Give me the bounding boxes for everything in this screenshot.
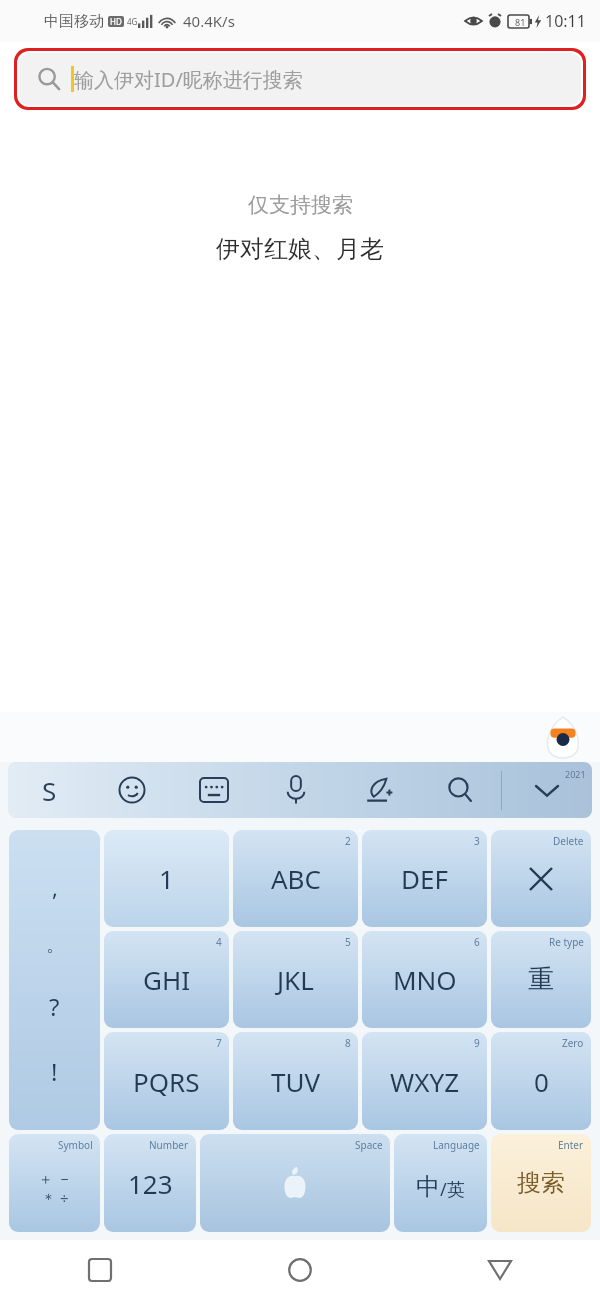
button[interactable]: 5 [233, 931, 358, 1028]
button[interactable]: Recent apps [0, 1240, 200, 1300]
staticText: GHI [143, 962, 191, 997]
staticText: Number [149, 1138, 189, 1152]
staticText: 3 [474, 834, 480, 848]
staticText: Space [355, 1138, 383, 1152]
staticText: 2 [345, 834, 351, 848]
button[interactable]: Language [394, 1134, 487, 1232]
button[interactable]: Zero [491, 1032, 591, 1130]
staticText: ? [49, 990, 60, 1023]
staticText: 6 [474, 935, 480, 949]
staticText: 中 [416, 1172, 440, 1202]
staticText: TUV [271, 1064, 321, 1099]
other: Search [37, 67, 61, 91]
staticText: ＊ ÷ [41, 1188, 69, 1208]
staticText: 10:11 [545, 10, 586, 32]
staticText: ABC [271, 861, 321, 896]
staticText: 。 [46, 934, 64, 957]
staticText: MNO [393, 962, 457, 997]
button[interactable]: 9 [362, 1032, 487, 1130]
button[interactable]: 2 [233, 830, 358, 927]
staticText: PQRS [133, 1064, 200, 1099]
button[interactable]: Search [419, 762, 501, 818]
button[interactable]: Number [104, 1134, 196, 1232]
button[interactable]: Voice input [255, 762, 337, 818]
staticText: Enter [558, 1138, 584, 1152]
button[interactable]: Back [400, 1240, 600, 1300]
staticText: 中国移动 [44, 12, 104, 31]
staticText: 8 [345, 1036, 351, 1050]
staticText: 123 [128, 1166, 173, 1201]
staticText: 搜索 [517, 1168, 565, 1198]
staticText: /英 [440, 1177, 465, 1202]
staticText: JKL [277, 962, 314, 997]
button[interactable]: , [9, 830, 100, 1130]
button[interactable]: Re type [491, 931, 591, 1028]
button[interactable]: 4 [104, 931, 229, 1028]
button[interactable]: 6 [362, 931, 487, 1028]
staticText: 7 [216, 1036, 222, 1050]
staticText: Delete [553, 834, 584, 848]
button[interactable]: Delete [491, 830, 591, 927]
button[interactable]: Search [19, 53, 581, 105]
button[interactable]: Handwriting [337, 762, 419, 818]
staticText: HD [110, 16, 122, 27]
staticText: 0 [534, 1064, 549, 1099]
staticText: 仅支持搜索 [248, 192, 353, 218]
button[interactable]: Keyboard [173, 762, 255, 818]
staticText: 4G [127, 16, 138, 27]
staticText: Re type [549, 935, 584, 949]
button[interactable]: Enter [491, 1134, 591, 1232]
staticText: 40.4K/s [183, 11, 235, 31]
staticText: 2021 [565, 768, 586, 780]
staticText: 81 [515, 16, 526, 28]
staticText: 9 [474, 1036, 480, 1050]
button[interactable]: Space [200, 1134, 390, 1232]
staticText: DEF [401, 861, 448, 896]
button[interactable]: 7 [104, 1032, 229, 1130]
button[interactable]: Emoji [91, 762, 173, 818]
staticText: Zero [562, 1036, 584, 1050]
staticText: 重 [528, 963, 554, 996]
staticText: ＋ － [38, 1168, 72, 1188]
staticText: WXYZ [390, 1064, 460, 1099]
button[interactable]: 1 [104, 830, 229, 927]
staticText: 1 [159, 861, 174, 896]
staticText: Language [433, 1138, 480, 1152]
staticText: 伊对红娘、月老 [216, 234, 384, 264]
button[interactable]: Hide keyboard [502, 762, 592, 818]
staticText: 4 [216, 935, 222, 949]
staticText: S [42, 773, 57, 808]
staticText: ! [51, 1055, 58, 1088]
staticText: 输入伊对ID/昵称进行搜索 [74, 66, 303, 93]
button[interactable]: Sogou [8, 762, 91, 818]
button[interactable]: Symbol [9, 1134, 100, 1232]
button[interactable]: Home [200, 1240, 400, 1300]
button[interactable]: 8 [233, 1032, 358, 1130]
staticText: Symbol [58, 1138, 93, 1152]
staticText: 5 [345, 935, 351, 949]
staticText: , [52, 872, 58, 902]
button[interactable]: 3 [362, 830, 487, 927]
other: Assistant [544, 716, 582, 758]
